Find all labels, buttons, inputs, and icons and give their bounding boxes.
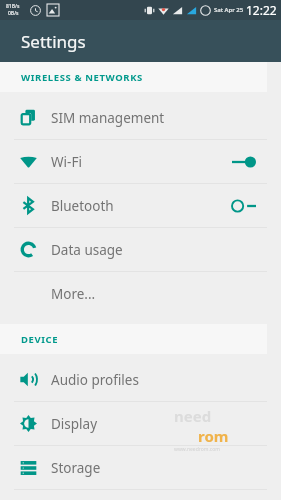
staticText: 0B/s [8, 10, 19, 17]
staticText: SIM management [51, 109, 165, 127]
staticText: Storage [51, 459, 101, 477]
button[interactable]: Storage [0, 446, 281, 489]
staticText: Settings [21, 30, 86, 53]
staticText: DEVICE [21, 333, 59, 346]
button[interactable]: Bluetooth [0, 184, 281, 227]
staticText: 81B/s [6, 3, 20, 10]
staticText: rom [198, 426, 229, 446]
staticText: Display [51, 415, 98, 433]
button[interactable]: Wi-Fi [0, 140, 281, 183]
staticText: Data usage [51, 241, 123, 259]
staticText: need [174, 406, 212, 426]
staticText: www.needrom.com [174, 446, 220, 453]
staticText: WIRELESS & NETWORKS [21, 71, 143, 84]
button[interactable]: Audio profiles [0, 358, 281, 401]
button[interactable]: Data usage [0, 228, 281, 271]
button[interactable]: Display [0, 402, 281, 445]
staticText: Bluetooth [51, 197, 114, 215]
staticText: Wi-Fi [51, 153, 82, 171]
button[interactable]: Turn off [231, 152, 257, 172]
button[interactable]: Turn on [231, 196, 257, 216]
staticText: Sat Apr 25 [214, 6, 244, 14]
button[interactable]: More... [0, 272, 281, 315]
staticText: More... [51, 285, 96, 303]
button[interactable]: SIM management [0, 96, 281, 139]
staticText: Audio profiles [51, 371, 139, 389]
staticText: 12:22 [246, 2, 277, 18]
